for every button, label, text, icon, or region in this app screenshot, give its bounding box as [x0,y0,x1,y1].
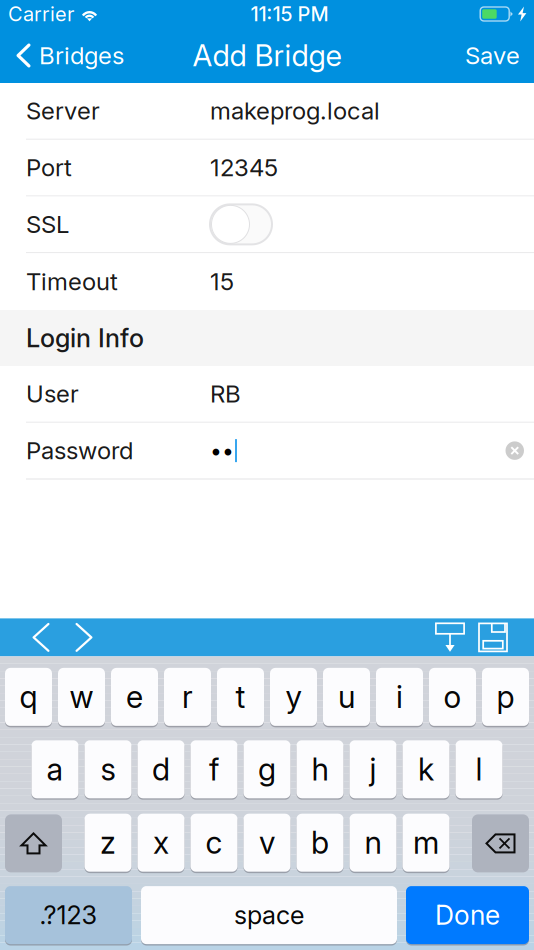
button[interactable]: x [137,814,184,873]
button[interactable]: s [84,740,131,800]
staticText: Bridges [39,41,124,70]
staticText: 11:15 PM [250,2,328,26]
staticText: q [19,678,37,715]
staticText: v [259,824,275,861]
staticText: Done [435,899,500,931]
staticText: SSL [26,210,69,239]
button[interactable]: e [111,668,158,727]
button[interactable]: k [402,740,449,800]
staticText: m [413,824,439,861]
button[interactable]: Next field [75,618,93,656]
button[interactable]: h [296,740,343,800]
staticText: s [100,751,115,788]
button[interactable]: g [243,740,290,800]
staticText: b [311,824,329,861]
button[interactable]: Bridges [0,28,134,83]
staticText: Save [465,41,520,70]
button[interactable]: m [402,814,449,873]
button[interactable]: t [217,668,264,727]
staticText: g [258,751,276,788]
button[interactable]: j [349,740,396,800]
button[interactable]: a [31,740,78,800]
staticText: Carrier [8,2,74,26]
staticText: o [443,678,461,715]
button[interactable]: r [164,668,211,727]
button[interactable]: f [190,740,237,800]
staticText: Login Info [26,323,144,353]
staticText: makeprog.local [210,96,380,125]
staticText: y [285,678,301,715]
staticText: Add Bridge [192,38,341,73]
staticText: u [338,678,355,715]
staticText: a [46,751,63,788]
button[interactable]: space [141,886,397,945]
staticText: w [69,678,93,715]
staticText: l [475,751,482,788]
staticText: Server [26,96,100,125]
button[interactable]: b [296,814,343,873]
staticText: c [205,824,222,861]
button[interactable]: n [349,814,396,873]
staticText: space [234,900,304,930]
staticText: •• [210,438,234,463]
button[interactable]: Dismiss keyboard [435,618,478,656]
button[interactable]: Shift [5,814,62,872]
button[interactable]: Save [449,28,534,83]
button[interactable]: u [323,668,370,727]
staticText: p [496,678,514,715]
staticText: Password [26,436,133,465]
button[interactable]: w [58,668,105,727]
staticText: .?123 [39,900,97,930]
button[interactable]: l [455,740,502,800]
staticText: j [369,751,376,788]
staticText: r [182,678,193,715]
button[interactable]: q [5,668,52,727]
staticText: f [209,751,219,788]
staticText: k [418,751,434,788]
button[interactable]: c [190,814,237,873]
button[interactable]: Previous field [0,618,75,656]
button[interactable]: SSL [210,204,272,244]
button[interactable]: y [270,668,317,727]
staticText: z [100,824,116,861]
staticText: d [152,751,170,788]
button[interactable]: d [137,740,184,800]
staticText: t [235,678,245,715]
staticText: e [126,678,143,715]
staticText: 15 [210,267,234,296]
staticText: User [26,379,79,408]
button[interactable]: .?123 [5,886,132,945]
button[interactable]: Backspace [472,814,529,872]
button[interactable]: o [429,668,476,727]
staticText: Timeout [26,267,118,296]
staticText: n [364,824,381,861]
button[interactable]: Save [478,618,534,656]
button[interactable]: v [243,814,290,873]
staticText: RB [210,379,241,408]
button[interactable]: p [482,668,529,727]
button[interactable]: Clear text [505,441,524,460]
button[interactable]: i [376,668,423,727]
staticText: Port [26,153,72,182]
button[interactable]: z [84,814,131,873]
staticText: 12345 [210,153,278,182]
button[interactable]: Done [406,886,529,945]
staticText: h [311,751,328,788]
staticText: x [153,824,169,861]
staticText: i [396,678,403,715]
